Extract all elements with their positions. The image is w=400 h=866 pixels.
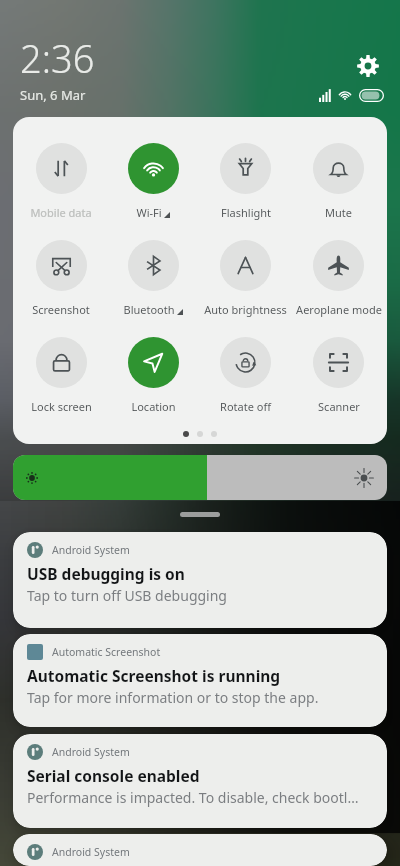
staticText: Flashlight	[221, 205, 271, 220]
staticText: Auto brightness	[204, 302, 287, 317]
button[interactable]: Mobile data	[15, 143, 107, 220]
staticText: Mute	[325, 205, 352, 220]
staticText: Scanner	[318, 399, 360, 414]
button[interactable]: Flashlight	[199, 143, 292, 220]
button[interactable]: Brightness	[13, 455, 387, 500]
staticText: Android System	[52, 745, 130, 759]
button[interactable]: Lock screen	[15, 337, 107, 414]
button[interactable]: Scanner	[292, 337, 385, 414]
button[interactable]: Android System	[13, 834, 387, 866]
button[interactable]: Android System	[13, 532, 387, 628]
staticText: Screenshot	[32, 302, 90, 317]
staticText: Automatic Screenshot is running	[27, 665, 281, 686]
staticText: Automatic Screenshot	[52, 645, 161, 659]
button[interactable]: Rotate off	[199, 337, 292, 414]
staticText: Serial console enabled	[27, 765, 200, 786]
staticText: Bluetooth	[123, 302, 175, 317]
button[interactable]: Wi-Fi	[107, 143, 199, 220]
button[interactable]: Location	[107, 337, 199, 414]
staticText: Aeroplane mode	[296, 302, 382, 317]
button[interactable]: Screenshot	[15, 240, 107, 317]
staticText: Sun, 6 Mar	[20, 86, 86, 104]
staticText: Location	[131, 399, 176, 414]
staticText: USB debugging is on	[27, 563, 185, 584]
staticText: 2:36	[20, 32, 95, 84]
button[interactable]: Mute	[292, 143, 385, 220]
staticText: Rotate off	[220, 399, 271, 414]
button[interactable]: Settings	[350, 48, 386, 84]
button[interactable]: Bluetooth	[107, 240, 199, 317]
staticText: Mobile data	[30, 205, 92, 220]
button[interactable]: Android System	[13, 734, 387, 828]
button[interactable]: Automatic Screenshot	[13, 634, 387, 727]
staticText: Tap to turn off USB debugging	[27, 586, 227, 605]
staticText: Android System	[52, 845, 130, 859]
staticText: Wi-Fi	[136, 205, 162, 220]
staticText: Tap for more information or to stop the …	[27, 688, 319, 707]
button[interactable]: Aeroplane mode	[292, 240, 385, 317]
staticText: Performance is impacted. To disable, che…	[27, 788, 359, 807]
staticText: Android System	[52, 543, 130, 557]
staticText: Lock screen	[31, 399, 92, 414]
button[interactable]: Auto brightness	[199, 240, 292, 317]
